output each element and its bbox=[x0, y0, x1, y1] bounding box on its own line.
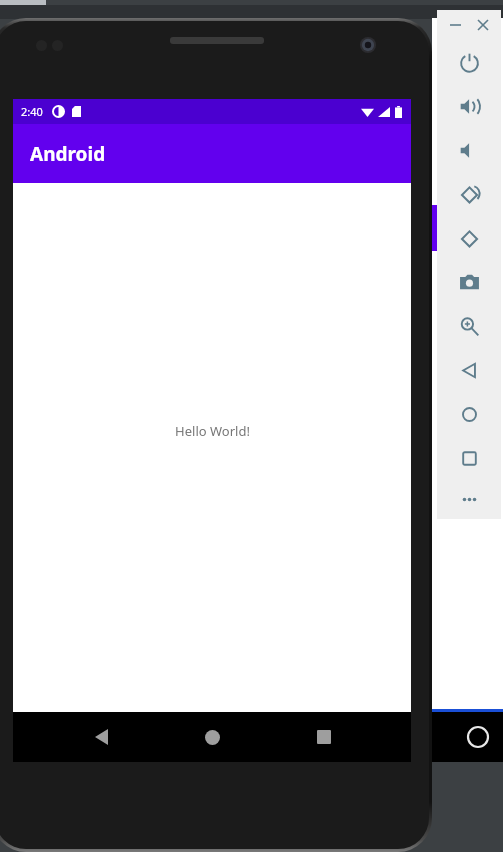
button[interactable]: Power bbox=[437, 40, 501, 84]
button[interactable]: Volume up bbox=[437, 84, 501, 128]
button[interactable]: More bbox=[437, 480, 501, 519]
button[interactable]: Home bbox=[466, 725, 490, 749]
button[interactable]: Recent apps bbox=[300, 713, 348, 761]
button[interactable]: Screenshot bbox=[437, 260, 501, 304]
button[interactable]: Home bbox=[437, 392, 501, 436]
button[interactable]: Back bbox=[77, 713, 125, 761]
button[interactable]: Home bbox=[188, 713, 236, 761]
staticText: 2:40 bbox=[21, 104, 43, 119]
staticText: Android bbox=[30, 141, 106, 167]
button[interactable]: Close bbox=[472, 14, 494, 36]
button[interactable]: Volume down bbox=[437, 128, 501, 172]
button[interactable]: Overview bbox=[437, 436, 501, 480]
button[interactable]: Zoom bbox=[437, 304, 501, 348]
button[interactable]: Minimize bbox=[444, 14, 466, 36]
staticText: Hello World! bbox=[175, 422, 250, 440]
button[interactable]: Back bbox=[437, 348, 501, 392]
button[interactable]: Rotate right bbox=[437, 216, 501, 260]
button[interactable]: Rotate left bbox=[437, 172, 501, 216]
button[interactable]: Android bbox=[13, 124, 411, 183]
